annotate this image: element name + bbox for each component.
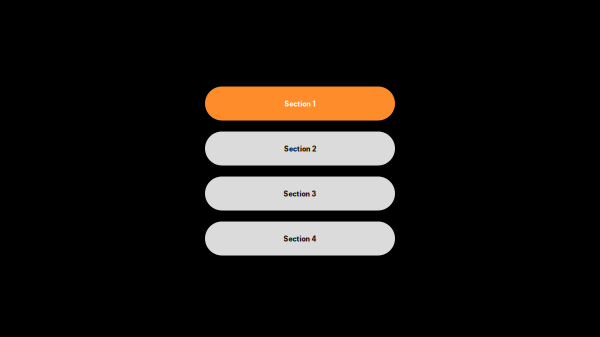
staticText: Section 4 xyxy=(283,235,316,243)
button[interactable]: Section 4 xyxy=(205,221,395,255)
button[interactable]: Section 3 xyxy=(205,176,395,210)
staticText: Section 2 xyxy=(284,145,316,153)
staticText: Section 3 xyxy=(283,190,316,198)
button[interactable]: Section 1 xyxy=(205,86,395,120)
staticText: Section 1 xyxy=(284,100,315,108)
button[interactable]: Section 2 xyxy=(205,131,395,165)
